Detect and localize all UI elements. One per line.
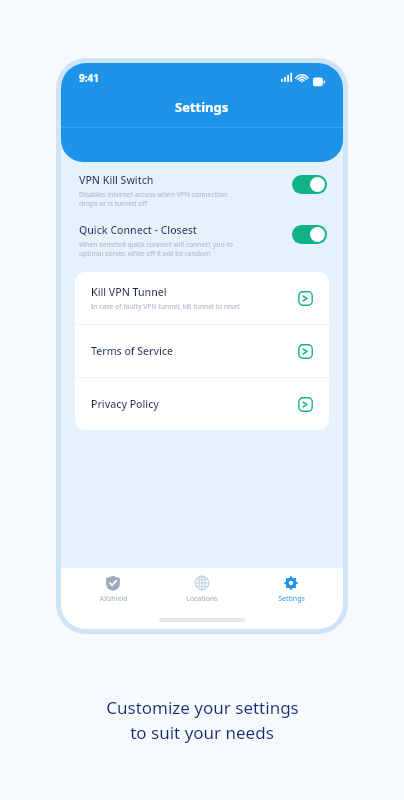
button[interactable]: Kill VPN Tunnel bbox=[75, 272, 329, 324]
staticText: 9:41 bbox=[79, 71, 99, 85]
button[interactable]: Settings bbox=[254, 568, 328, 614]
staticText: VPN Kill Switch bbox=[79, 173, 154, 187]
staticText: When selected quick connect will connect… bbox=[79, 240, 233, 249]
button[interactable]: Open bbox=[298, 397, 313, 412]
staticText: Disables internet access when VPN connec… bbox=[79, 190, 228, 199]
button[interactable]: Terms of Service bbox=[75, 325, 329, 377]
staticText: AXshield bbox=[99, 594, 128, 604]
staticText: In case of faulty VPN tunnel, kill tunne… bbox=[91, 302, 241, 311]
button[interactable]: Toggle bbox=[292, 225, 327, 244]
staticText: Terms of Service bbox=[91, 344, 174, 358]
staticText: Quick Connect - Closest bbox=[79, 223, 197, 237]
button[interactable]: Toggle bbox=[292, 175, 327, 194]
staticText: optimal server, while off it will be ran… bbox=[79, 249, 211, 258]
staticText: Customize your settings bbox=[106, 696, 299, 719]
staticText: Settings bbox=[278, 594, 305, 604]
staticText: Settings bbox=[175, 98, 229, 116]
staticText: Privacy Policy bbox=[91, 397, 159, 411]
staticText: Kill VPN Tunnel bbox=[91, 285, 167, 299]
button[interactable]: Locations bbox=[165, 568, 239, 614]
staticText: to suit your needs bbox=[130, 721, 274, 744]
button[interactable]: Open bbox=[298, 344, 313, 359]
button[interactable]: Open bbox=[298, 291, 313, 306]
button[interactable]: Quick Connect - Closest bbox=[61, 212, 343, 262]
button[interactable]: VPN Kill Switch bbox=[61, 162, 343, 212]
button[interactable]: Privacy Policy bbox=[75, 378, 329, 430]
staticText: drops or is turned off bbox=[79, 199, 147, 208]
staticText: Locations bbox=[186, 594, 218, 604]
button[interactable]: AXshield bbox=[76, 568, 150, 614]
